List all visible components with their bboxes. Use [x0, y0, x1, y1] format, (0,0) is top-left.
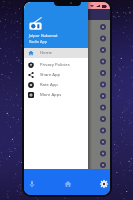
button[interactable]: Home [24, 48, 88, 58]
button[interactable]: Settings [100, 180, 108, 188]
staticText: Rate App [40, 82, 58, 88]
staticText: More Apps [40, 92, 62, 98]
button[interactable]: Home [64, 180, 72, 188]
staticText: Share App [40, 72, 61, 78]
staticText: Home [40, 50, 52, 56]
button[interactable]: Privacy Policies [24, 60, 88, 70]
button[interactable]: More Apps [24, 90, 88, 100]
button[interactable]: Voice search [28, 180, 36, 188]
staticText: Radio App [29, 39, 48, 44]
staticText: Privacy Policies [40, 62, 70, 68]
button[interactable]: Share App [24, 70, 88, 80]
staticText: Jaipur Hukumat [29, 33, 58, 38]
button[interactable]: Rate App [24, 80, 88, 90]
